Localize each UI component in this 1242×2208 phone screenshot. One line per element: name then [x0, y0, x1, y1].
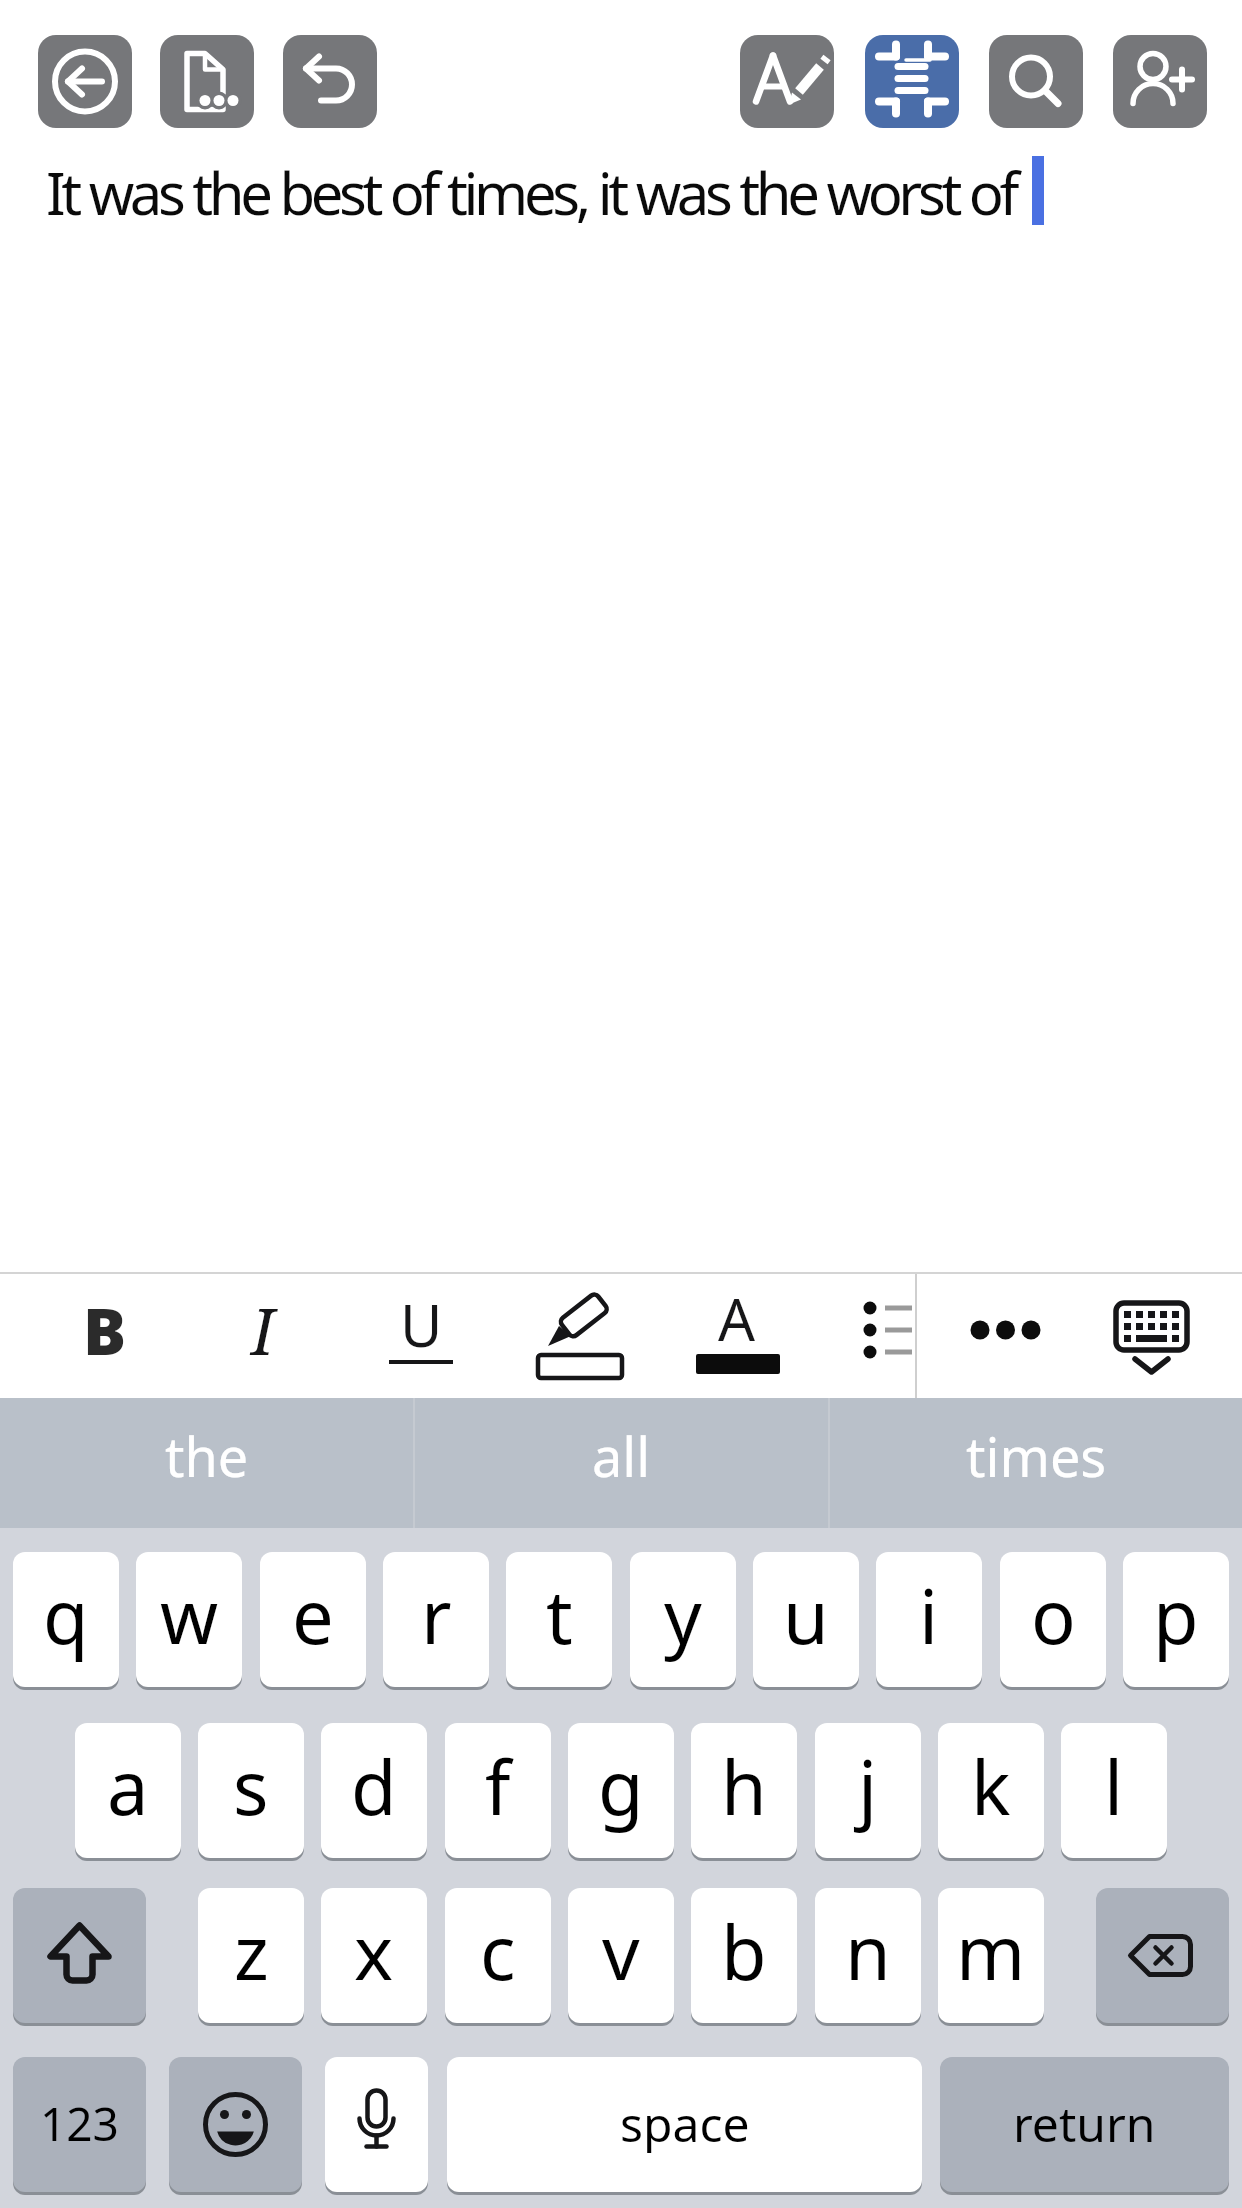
button[interactable]: U: [371, 1269, 471, 1379]
button[interactable]: c: [445, 1888, 551, 2023]
button[interactable]: i: [876, 1552, 982, 1687]
button[interactable]: b: [691, 1888, 797, 2023]
button[interactable]: r: [383, 1552, 489, 1687]
button[interactable]: g: [568, 1723, 674, 1858]
button[interactable]: 123: [13, 2057, 146, 2192]
staticText: I: [251, 1287, 275, 1374]
button[interactable]: p: [1123, 1552, 1229, 1687]
button[interactable]: k: [938, 1723, 1044, 1858]
button[interactable]: v: [568, 1888, 674, 2023]
staticText: v: [602, 1901, 640, 2002]
staticText: times: [966, 1419, 1107, 1493]
button[interactable]: [865, 35, 959, 128]
button[interactable]: the: [0, 1398, 413, 1528]
staticText: a: [107, 1736, 149, 1837]
staticText: p: [1153, 1565, 1199, 1666]
staticText: d: [351, 1736, 397, 1837]
button[interactable]: [160, 35, 254, 128]
staticText: e: [292, 1565, 334, 1666]
button[interactable]: t: [506, 1552, 612, 1687]
button[interactable]: w: [136, 1552, 242, 1687]
button[interactable]: x: [321, 1888, 427, 2023]
button[interactable]: [838, 1275, 908, 1390]
staticText: x: [354, 1901, 394, 2002]
staticText: B: [83, 1287, 127, 1374]
button[interactable]: j: [815, 1723, 921, 1858]
button[interactable]: A: [687, 1275, 787, 1390]
button[interactable]: h: [691, 1723, 797, 1858]
button[interactable]: f: [445, 1723, 551, 1858]
staticText: A: [718, 1279, 756, 1358]
staticText: z: [234, 1901, 269, 2002]
button[interactable]: d: [321, 1723, 427, 1858]
button[interactable]: s: [198, 1723, 304, 1858]
staticText: w: [160, 1565, 219, 1666]
staticText: s: [233, 1736, 269, 1837]
button[interactable]: z: [198, 1888, 304, 2023]
button[interactable]: u: [753, 1552, 859, 1687]
button[interactable]: [283, 35, 377, 128]
button[interactable]: a: [75, 1723, 181, 1858]
staticText: i: [919, 1565, 939, 1666]
button[interactable]: [1101, 1275, 1201, 1390]
button[interactable]: I: [213, 1275, 313, 1385]
button[interactable]: [955, 1275, 1055, 1390]
staticText: h: [721, 1736, 767, 1837]
staticText: l: [1104, 1736, 1124, 1837]
button[interactable]: o: [1000, 1552, 1106, 1687]
button[interactable]: [740, 35, 834, 128]
staticText: f: [485, 1736, 511, 1837]
staticText: k: [971, 1736, 1011, 1837]
button[interactable]: q: [13, 1552, 119, 1687]
button[interactable]: n: [815, 1888, 921, 2023]
staticText: U: [400, 1285, 443, 1364]
button[interactable]: m: [938, 1888, 1044, 2023]
staticText: It was the best of times, it was the wor…: [46, 153, 1016, 232]
button[interactable]: space: [447, 2057, 922, 2192]
staticText: y: [664, 1565, 702, 1666]
button[interactable]: return: [940, 2057, 1229, 2192]
staticText: g: [598, 1736, 644, 1837]
button[interactable]: B: [55, 1275, 155, 1385]
button[interactable]: [1113, 35, 1207, 128]
button[interactable]: y: [630, 1552, 736, 1687]
button[interactable]: e: [260, 1552, 366, 1687]
button[interactable]: [325, 2057, 428, 2192]
staticText: o: [1031, 1565, 1076, 1666]
button[interactable]: [169, 2057, 302, 2192]
staticText: m: [956, 1901, 1026, 2002]
staticText: the: [165, 1419, 249, 1493]
button[interactable]: [38, 35, 132, 128]
staticText: return: [1013, 2091, 1156, 2156]
button[interactable]: all: [415, 1398, 828, 1528]
button[interactable]: l: [1061, 1723, 1167, 1858]
button[interactable]: times: [830, 1398, 1242, 1528]
staticText: r: [421, 1565, 452, 1666]
staticText: q: [43, 1565, 89, 1666]
staticText: c: [480, 1901, 516, 2002]
button[interactable]: [1096, 1888, 1229, 2023]
button[interactable]: [13, 1888, 146, 2023]
button[interactable]: [529, 1275, 629, 1390]
staticText: t: [546, 1565, 573, 1666]
staticText: space: [620, 2091, 750, 2156]
staticText: 123: [40, 2092, 119, 2155]
staticText: j: [858, 1736, 878, 1837]
staticText: all: [592, 1419, 651, 1493]
staticText: b: [721, 1901, 767, 2002]
button[interactable]: [989, 35, 1083, 128]
staticText: u: [783, 1565, 829, 1666]
staticText: n: [845, 1901, 891, 2002]
